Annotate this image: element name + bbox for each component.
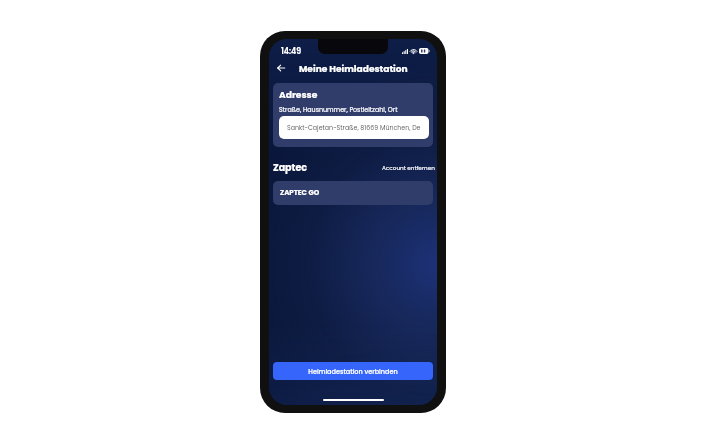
staticText: ZAPTEC GO [280, 188, 320, 198]
staticText: Meine Heimladestation [299, 62, 408, 75]
staticText: Account entfernen [382, 164, 435, 172]
staticText: Sankt-Cajetan-Straße, 81669 München, De [287, 123, 421, 132]
button[interactable]: Sankt-Cajetan-Straße, 81669 München, De [279, 116, 429, 139]
staticText: 14:49 [281, 46, 302, 56]
staticText: Straße, Hausnummer, Postleitzahl, Ort [279, 105, 398, 114]
staticText: Heimladestation verbinden [308, 367, 398, 376]
button[interactable]: Account entfernen [382, 164, 435, 172]
button[interactable]: Heimladestation verbinden [273, 362, 433, 380]
staticText: Zaptec [273, 161, 308, 174]
staticText: Adresse [279, 88, 318, 101]
button[interactable]: Back [273, 60, 289, 76]
button[interactable]: ZAPTEC GO [273, 181, 433, 205]
